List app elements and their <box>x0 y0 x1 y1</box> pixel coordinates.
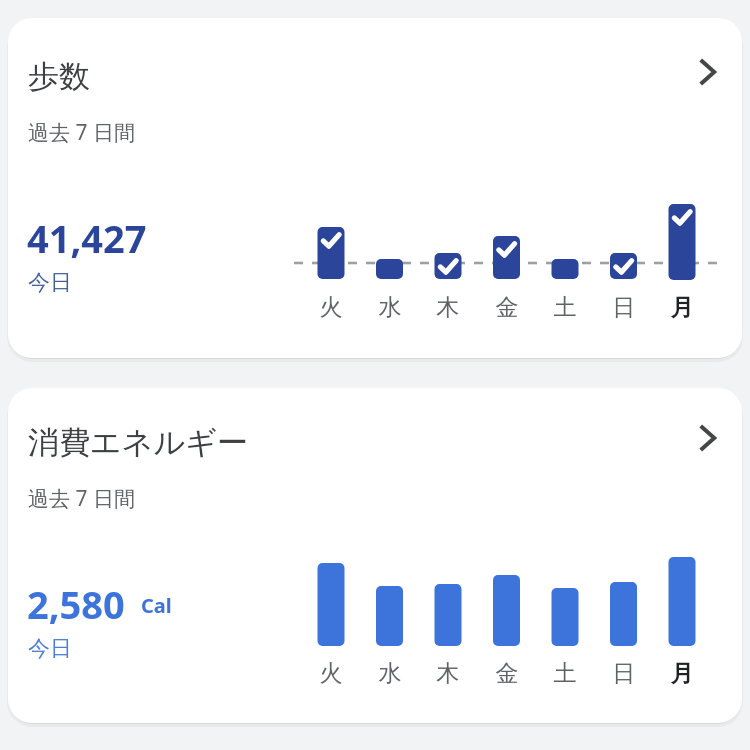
staticText: 過去 7 日間 <box>28 484 135 513</box>
staticText: 消費エネルギー <box>28 423 248 462</box>
staticText: 41,427 <box>27 212 147 264</box>
staticText: 歩数 <box>28 57 90 96</box>
staticText: 月 <box>662 659 702 750</box>
button[interactable] <box>8 388 742 723</box>
staticText: 火 <box>311 659 351 750</box>
staticText: 日 <box>604 659 644 750</box>
staticText: 土 <box>545 659 585 750</box>
button[interactable] <box>8 18 742 358</box>
staticText: 金 <box>487 659 527 750</box>
staticText: 金 <box>487 293 527 750</box>
staticText: 今日 <box>28 269 72 297</box>
staticText: 過去 7 日間 <box>28 118 135 147</box>
staticText: 今日 <box>28 635 72 663</box>
staticText: 日 <box>604 293 644 750</box>
staticText: 木 <box>428 293 468 750</box>
staticText: 2,580 <box>27 578 125 630</box>
staticText: 水 <box>370 659 410 750</box>
staticText: Cal <box>141 592 172 619</box>
staticText: 火 <box>311 293 351 750</box>
button[interactable]: 消費エネルギーの詳細を開く <box>682 412 734 464</box>
staticText: 土 <box>545 293 585 750</box>
staticText: 木 <box>428 659 468 750</box>
staticText: 水 <box>370 293 410 750</box>
button[interactable]: 歩数の詳細を開く <box>682 46 734 98</box>
staticText: 月 <box>662 293 702 750</box>
